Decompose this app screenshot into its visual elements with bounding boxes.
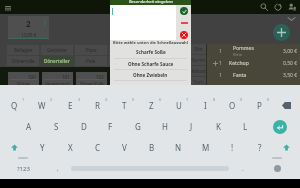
button[interactable]: 1 [207,57,300,69]
button[interactable]: ? [246,137,273,158]
button[interactable]: P [246,95,273,116]
staticText: X [68,142,73,153]
button[interactable]: N [165,137,192,158]
button[interactable]: Backspace [273,95,300,116]
button[interactable]: Suppen [177,56,189,66]
button[interactable]: Bon [191,44,206,54]
button[interactable]: Pide [75,56,107,66]
button[interactable]: L [232,116,259,137]
button[interactable]: Scharfe Soße [110,46,191,58]
button[interactable]: Remove [180,19,188,27]
staticText: L [243,121,248,132]
button[interactable]: C [84,137,111,158]
button[interactable]: A [15,116,43,137]
button[interactable]: Expand [286,14,296,24]
button[interactable]: Add item [273,24,290,41]
button[interactable]: Confirm [180,7,188,15]
button[interactable]: Q [0,95,28,116]
staticText: 3 [78,97,81,102]
staticText: Bitte wähle unten die Schnellauswahl aus… [110,40,191,46]
staticText: F [108,121,113,132]
button[interactable]: 103 [110,72,141,92]
staticText: Fanta [233,72,247,79]
button[interactable]: T [111,95,138,116]
staticText: Ohne Zwiebeln [133,72,168,78]
staticText: Bon [194,46,203,52]
button[interactable]: B [138,137,165,158]
button[interactable]: 1 [207,69,300,81]
button[interactable]: Börek [143,56,175,66]
button[interactable]: 102 [76,72,107,92]
button[interactable]: S [43,116,70,137]
button[interactable]: Z [138,95,165,116]
button[interactable]: Search [257,0,271,14]
staticText: H [162,121,168,132]
staticText: 102 [96,74,104,80]
button[interactable]: F [97,116,124,137]
staticText: , [57,165,59,173]
button[interactable]: Ohne Zwiebeln [110,70,191,80]
staticText: Beilagen [14,47,33,53]
button[interactable]: U [165,95,192,116]
staticText: 3,50 € [283,72,298,79]
button[interactable]: Y [28,137,56,158]
button[interactable]: Rabatt [191,66,206,76]
button[interactable]: 101 [42,72,73,92]
button[interactable]: Cancel [180,31,188,39]
staticText: 9 [240,97,243,102]
button[interactable]: Storno [191,55,206,65]
staticText: I [204,100,207,111]
button[interactable]: Getränke [41,45,73,55]
button[interactable]: , [46,158,69,179]
button[interactable]: Pizza [75,45,107,55]
button[interactable]: Settings [254,158,300,179]
staticText: 100 [28,74,36,80]
button[interactable]: Shift [273,137,300,158]
button[interactable]: 100 [8,72,39,92]
button[interactable]: O [219,95,246,116]
button[interactable]: Refresh [271,0,285,14]
staticText: 2 [50,97,53,102]
button[interactable]: 104 [144,72,175,92]
staticText: 1 [219,60,222,67]
button[interactable]: Shift [0,137,28,158]
button[interactable]: Salate [109,45,141,55]
button[interactable]: ! [219,137,246,158]
button[interactable]: 1 [207,45,300,57]
button[interactable]: X [56,137,84,158]
staticText: Storno [191,57,206,63]
staticText: Pommes [233,45,254,52]
button[interactable]: Ohne Scharfe Sauce [110,59,191,69]
button[interactable]: Enter [259,116,300,137]
button[interactable]: D [70,116,97,137]
button[interactable]: Lahmacun [109,56,141,66]
staticText: U [176,100,182,111]
staticText: 0 [267,97,270,102]
button[interactable]: Tisch [191,77,206,87]
button[interactable]: Dönerrolle [7,56,39,66]
button[interactable]: Space [69,158,231,179]
button[interactable]: Account [285,0,299,14]
staticText: Y [40,142,45,153]
button[interactable]: W [28,95,56,116]
staticText: 2 [26,18,31,29]
button[interactable]: K [205,116,232,137]
staticText: G [135,121,141,132]
button[interactable]: ?123 [0,158,46,179]
button[interactable]: Dessert [143,45,175,55]
button[interactable]: I [192,95,219,116]
button[interactable]: V [111,137,138,158]
button[interactable]: Beilagen [7,45,39,55]
button[interactable]: H [151,116,178,137]
button[interactable]: G [124,116,151,137]
button[interactable]: M [192,137,219,158]
button[interactable]: Dönerteller [41,56,73,66]
button[interactable]: 2 [8,16,49,39]
button[interactable]: J [178,116,205,137]
staticText: Q [11,100,18,111]
button[interactable]: R [84,95,111,116]
button[interactable]: Menu [2,2,13,13]
button[interactable]: E [56,95,84,116]
